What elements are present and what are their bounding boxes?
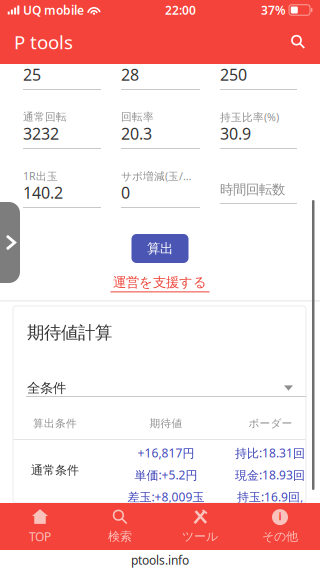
staticText: 期待値 bbox=[149, 417, 182, 430]
staticText: 22:00 bbox=[165, 2, 196, 18]
button[interactable]: 全条件 bbox=[27, 378, 293, 398]
staticText: 140.2 bbox=[23, 182, 63, 203]
staticText: 検索 bbox=[108, 529, 132, 544]
staticText: 全条件 bbox=[27, 380, 66, 396]
staticText: ツール bbox=[182, 529, 218, 544]
staticText: 持玉比率(%) bbox=[220, 110, 279, 124]
button[interactable]: TOP bbox=[0, 503, 80, 550]
staticText: i bbox=[278, 509, 281, 523]
staticText: 37% bbox=[261, 2, 286, 18]
staticText: 20.3 bbox=[121, 123, 152, 144]
button[interactable]: 運営を支援する bbox=[110, 274, 209, 292]
staticText: 通常回転 bbox=[23, 110, 67, 123]
button[interactable]: i bbox=[240, 503, 320, 550]
button[interactable]: 算出 bbox=[131, 234, 188, 263]
staticText: 250 bbox=[220, 64, 247, 85]
staticText: ptools.info bbox=[131, 552, 189, 568]
staticText: その他 bbox=[262, 529, 298, 544]
staticText: 期待値計算 bbox=[27, 322, 112, 343]
button[interactable]: 検索 bbox=[80, 503, 160, 550]
staticText: P tools bbox=[14, 30, 73, 54]
staticText: 1R出玉 bbox=[23, 169, 58, 183]
staticText: 算出条件 bbox=[33, 417, 77, 430]
staticText: 30.9 bbox=[220, 123, 251, 144]
staticText: 運営を支援する bbox=[113, 274, 207, 290]
staticText: 0 bbox=[121, 182, 130, 203]
staticText: 3232 bbox=[23, 123, 59, 144]
button[interactable]: ツール bbox=[160, 503, 240, 550]
staticText: 単価:+5.2円 bbox=[134, 467, 197, 483]
staticText: TOP bbox=[29, 528, 51, 544]
staticText: UQ mobile bbox=[23, 2, 84, 18]
staticText: 持比:18.31回 bbox=[235, 445, 305, 461]
staticText: 回転率 bbox=[121, 110, 154, 123]
staticText: ボーダー bbox=[248, 417, 292, 430]
staticText: 持玉:16.9回, bbox=[237, 489, 303, 505]
staticText: 通常条件 bbox=[31, 463, 79, 478]
button[interactable]: Search bbox=[276, 20, 320, 64]
staticText: 差玉:+8,009玉 bbox=[127, 489, 204, 505]
staticText: サボ増減(玉/… bbox=[121, 169, 191, 183]
staticText: 25 bbox=[23, 64, 41, 85]
button[interactable]: Open side menu bbox=[0, 202, 20, 283]
staticText: 時間回転数 bbox=[220, 181, 285, 198]
staticText: 算出 bbox=[147, 240, 173, 257]
staticText: 現金:18.93回 bbox=[235, 467, 305, 483]
staticText: 28 bbox=[121, 64, 139, 85]
staticText: +16,817円 bbox=[137, 445, 194, 461]
